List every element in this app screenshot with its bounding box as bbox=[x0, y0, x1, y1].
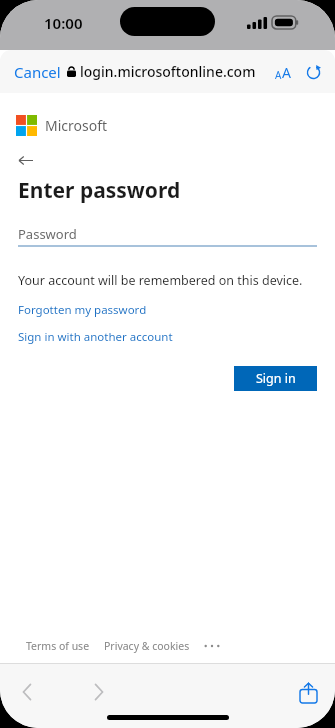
staticText: Privacy & cookies bbox=[104, 639, 190, 653]
button[interactable]: Forgotten my password bbox=[18, 302, 147, 318]
button[interactable]: Password bbox=[18, 221, 317, 247]
staticText: Cancel bbox=[14, 62, 61, 82]
button[interactable]: Terms of use bbox=[26, 639, 90, 653]
button[interactable]: login.microsoftonline.com bbox=[63, 59, 260, 84]
button[interactable]: Text size bbox=[270, 59, 296, 85]
staticText: Sign in with another account bbox=[18, 329, 173, 345]
staticText: A bbox=[282, 63, 291, 82]
staticText: Sign in bbox=[256, 370, 296, 387]
button[interactable]: Back bbox=[13, 147, 39, 173]
staticText: A bbox=[275, 68, 282, 82]
staticText: Your account will be remembered on this … bbox=[18, 272, 303, 289]
staticText: Enter password bbox=[18, 176, 181, 205]
button[interactable]: Share bbox=[291, 675, 325, 709]
staticText: login.microsoftonline.com bbox=[80, 62, 256, 81]
staticText: Terms of use bbox=[26, 639, 90, 653]
button[interactable]: More options bbox=[200, 638, 224, 654]
button[interactable]: Forward bbox=[82, 675, 116, 709]
staticText: Microsoft bbox=[45, 116, 108, 135]
button[interactable]: Reload bbox=[300, 59, 326, 85]
button[interactable]: Cancel bbox=[8, 58, 67, 86]
staticText: 10:00 bbox=[44, 13, 83, 33]
button[interactable]: Back bbox=[10, 675, 44, 709]
button[interactable]: Sign in bbox=[234, 366, 317, 391]
button[interactable]: Sign in with another account bbox=[18, 329, 173, 345]
button[interactable]: Privacy & cookies bbox=[104, 639, 190, 653]
staticText: Forgotten my password bbox=[18, 302, 147, 318]
staticText: Password bbox=[18, 225, 77, 243]
